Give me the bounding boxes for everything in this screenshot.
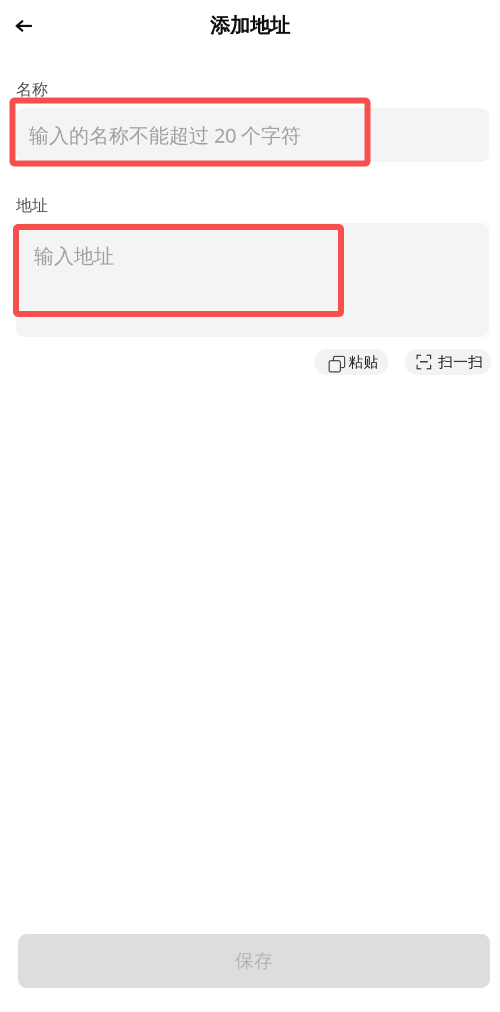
staticText: 输入的名称不能超过 20 个字符 <box>29 122 301 148</box>
button[interactable]: 保存 <box>18 934 490 988</box>
staticText: 粘贴 <box>348 353 378 371</box>
button[interactable]: 扫一扫 <box>404 349 491 375</box>
staticText: 地址 <box>16 196 48 215</box>
staticText: 扫一扫 <box>438 353 483 371</box>
staticText: 保存 <box>235 949 273 972</box>
staticText: 输入地址 <box>34 244 114 269</box>
staticText: 名称 <box>16 80 48 99</box>
button[interactable]: 粘贴 <box>314 349 388 375</box>
button[interactable]: Back <box>2 4 46 48</box>
staticText: 添加地址 <box>210 13 290 38</box>
